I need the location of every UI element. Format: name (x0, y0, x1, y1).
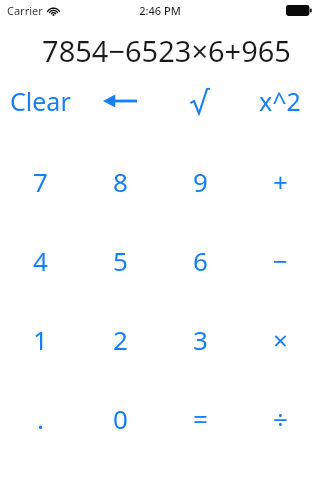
button[interactable]: 6 (160, 221, 240, 300)
button[interactable]: 2 (80, 300, 160, 379)
staticText: 3 (193, 322, 208, 357)
button[interactable]: = (160, 379, 240, 458)
staticText: Carrier (7, 3, 43, 18)
staticText: 6 (193, 243, 208, 278)
staticText: 7854−6523×6+965 (42, 31, 291, 70)
button[interactable]: Square root (160, 78, 240, 124)
staticText: 1 (33, 322, 48, 357)
staticText: x^2 (259, 84, 301, 118)
staticText: + (273, 164, 288, 199)
button[interactable]: 9 (160, 142, 240, 221)
button[interactable]: 8 (80, 142, 160, 221)
button[interactable]: + (240, 142, 320, 221)
button[interactable]: 4 (0, 221, 80, 300)
staticText: 9 (193, 164, 208, 199)
button[interactable]: × (240, 300, 320, 379)
staticText: . (37, 401, 44, 436)
staticText: = (193, 401, 208, 436)
button[interactable]: − (240, 221, 320, 300)
button[interactable]: Clear (0, 78, 80, 124)
staticText: 7 (33, 164, 48, 199)
staticText: × (273, 322, 288, 357)
staticText: Clear (10, 84, 71, 118)
staticText: 8 (113, 164, 128, 199)
staticText: 2:46 PM (139, 3, 181, 18)
staticText: ÷ (273, 401, 288, 436)
button[interactable]: Backspace (80, 78, 160, 124)
staticText: 5 (113, 243, 128, 278)
button[interactable]: x^2 (240, 78, 320, 124)
button[interactable]: 7 (0, 142, 80, 221)
staticText: 0 (113, 401, 128, 436)
button[interactable]: 1 (0, 300, 80, 379)
button[interactable]: . (0, 379, 80, 458)
button[interactable]: 3 (160, 300, 240, 379)
staticText: − (273, 243, 288, 278)
button[interactable]: 5 (80, 221, 160, 300)
button[interactable]: 0 (80, 379, 160, 458)
staticText: 4 (33, 243, 48, 278)
staticText: 2 (113, 322, 128, 357)
button[interactable]: ÷ (240, 379, 320, 458)
